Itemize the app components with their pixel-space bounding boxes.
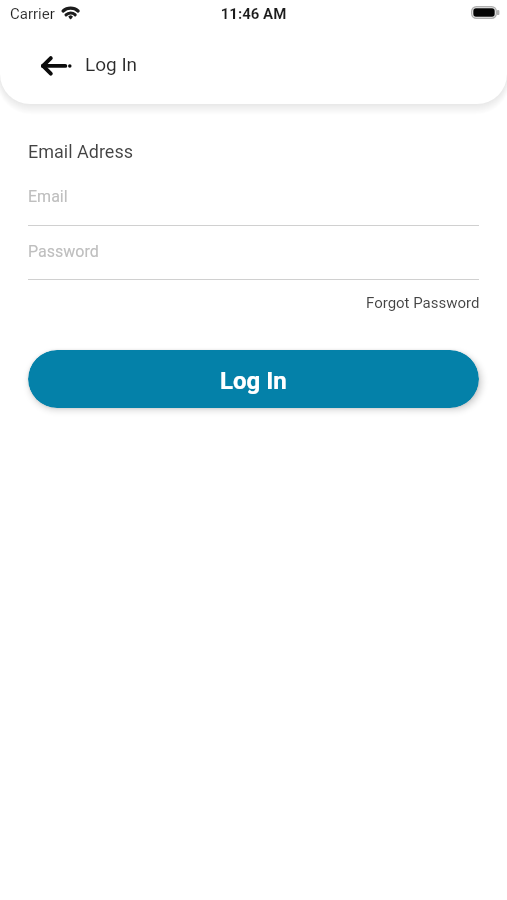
button[interactable]: Log In [28,350,479,408]
button[interactable]: Forgot Password [366,288,480,318]
staticText: Log In [220,367,287,395]
staticText: Password [28,242,99,261]
staticText: Email Adress [28,141,133,162]
staticText: Log In [85,53,138,75]
staticText: Email [28,187,68,206]
button[interactable]: Back [38,50,78,82]
staticText: 11:46 AM [0,5,507,23]
button[interactable]: Email [28,182,479,227]
button[interactable]: Password [28,237,479,280]
staticText: Carrier [10,5,55,23]
staticText: Forgot Password [366,294,480,312]
